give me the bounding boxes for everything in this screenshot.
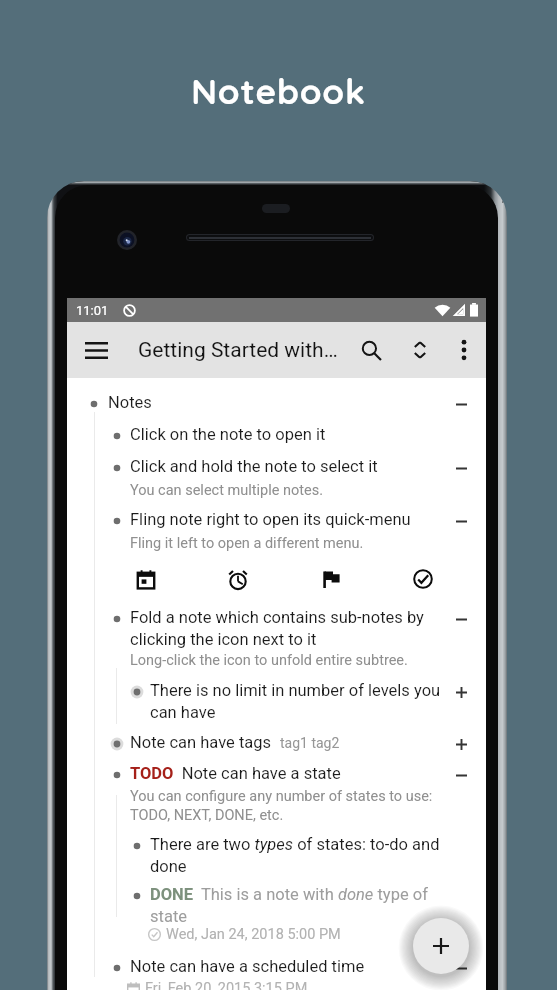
button[interactable]: Notes (67, 378, 486, 990)
staticText: Fold a note which contains sub-notes by … (130, 608, 448, 649)
staticText: Click on the note to open it (130, 425, 460, 444)
staticText: There is no limit in number of levels yo… (150, 681, 462, 722)
staticText: Notebook (0, 69, 557, 113)
button[interactable]: Alarm (222, 563, 254, 595)
button[interactable]: Collapse (447, 954, 475, 982)
staticText: Long-click the icon to unfold entire sub… (130, 652, 470, 669)
button[interactable]: Collapse (447, 605, 475, 633)
staticText: Fling it left to open a different menu. (130, 535, 470, 552)
staticText: Note can have tags (130, 733, 272, 752)
staticText: tag1 tag2 (280, 735, 340, 751)
staticText: You can configure any number of states t… (130, 788, 440, 824)
button[interactable]: Search (351, 330, 391, 370)
staticText: There are two types of states: to-do and… (150, 835, 470, 876)
staticText: Getting Started with… (138, 338, 338, 363)
button[interactable]: Collapse (447, 390, 475, 418)
button[interactable]: Mark done (407, 563, 439, 595)
staticText: Fri, Feb 20, 2015 3:15 PM (145, 980, 308, 990)
staticText: 11:01 (76, 303, 109, 318)
staticText: TODO Note can have a state (130, 764, 341, 783)
button[interactable]: Calendar (130, 563, 162, 595)
button[interactable]: Expand or collapse all (400, 330, 440, 370)
button[interactable]: Collapse (447, 761, 475, 789)
staticText: Click and hold the note to select it (130, 457, 460, 476)
button[interactable]: Expand (447, 678, 475, 706)
staticText: Notes (108, 393, 438, 412)
button[interactable]: Menu (77, 331, 115, 369)
staticText: Wed, Jan 24, 2018 5:00 PM (166, 926, 341, 943)
button[interactable]: Add note (413, 918, 469, 974)
staticText: DONE This is a note with done type of st… (150, 885, 462, 926)
staticText: You can select multiple notes. (130, 482, 470, 499)
button[interactable]: Flag (315, 563, 347, 595)
button[interactable]: Collapse (447, 454, 475, 482)
button[interactable]: Collapse (447, 507, 475, 535)
button[interactable]: Expand (447, 730, 475, 758)
staticText: Note can have a scheduled time (130, 957, 460, 976)
staticText: Fling note right to open its quick-menu (130, 510, 460, 529)
button[interactable]: More options (444, 330, 484, 370)
